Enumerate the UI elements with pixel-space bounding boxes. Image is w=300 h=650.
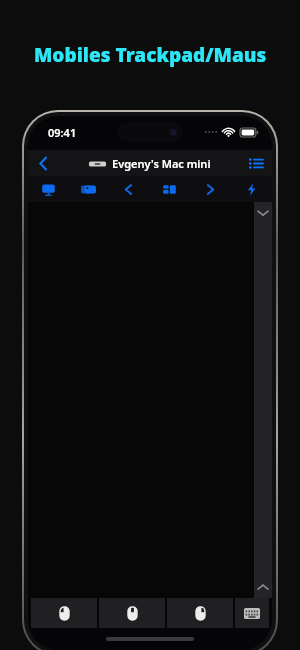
button[interactable]: Right click (167, 598, 233, 628)
staticText: Mobiles Trackpad/Maus (34, 42, 267, 68)
button[interactable]: Left click (31, 598, 97, 628)
button[interactable]: Media (68, 176, 108, 202)
button[interactable]: Evgeny's Mac mini (89, 156, 211, 171)
staticText: 09:41 (48, 125, 77, 140)
button[interactable]: Next (190, 176, 231, 202)
staticText: Evgeny's Mac mini (112, 156, 211, 171)
button[interactable]: List (240, 150, 272, 176)
button[interactable]: Back (28, 150, 58, 176)
button[interactable]: Middle click (99, 598, 165, 628)
button[interactable]: Scroll up (254, 576, 272, 598)
button[interactable]: Display (28, 176, 68, 202)
button[interactable]: Scroll down (254, 202, 272, 224)
button[interactable]: Power (231, 176, 272, 202)
button[interactable]: Layout (149, 176, 190, 202)
button[interactable]: Previous (108, 176, 149, 202)
button[interactable]: Keyboard (235, 598, 269, 628)
